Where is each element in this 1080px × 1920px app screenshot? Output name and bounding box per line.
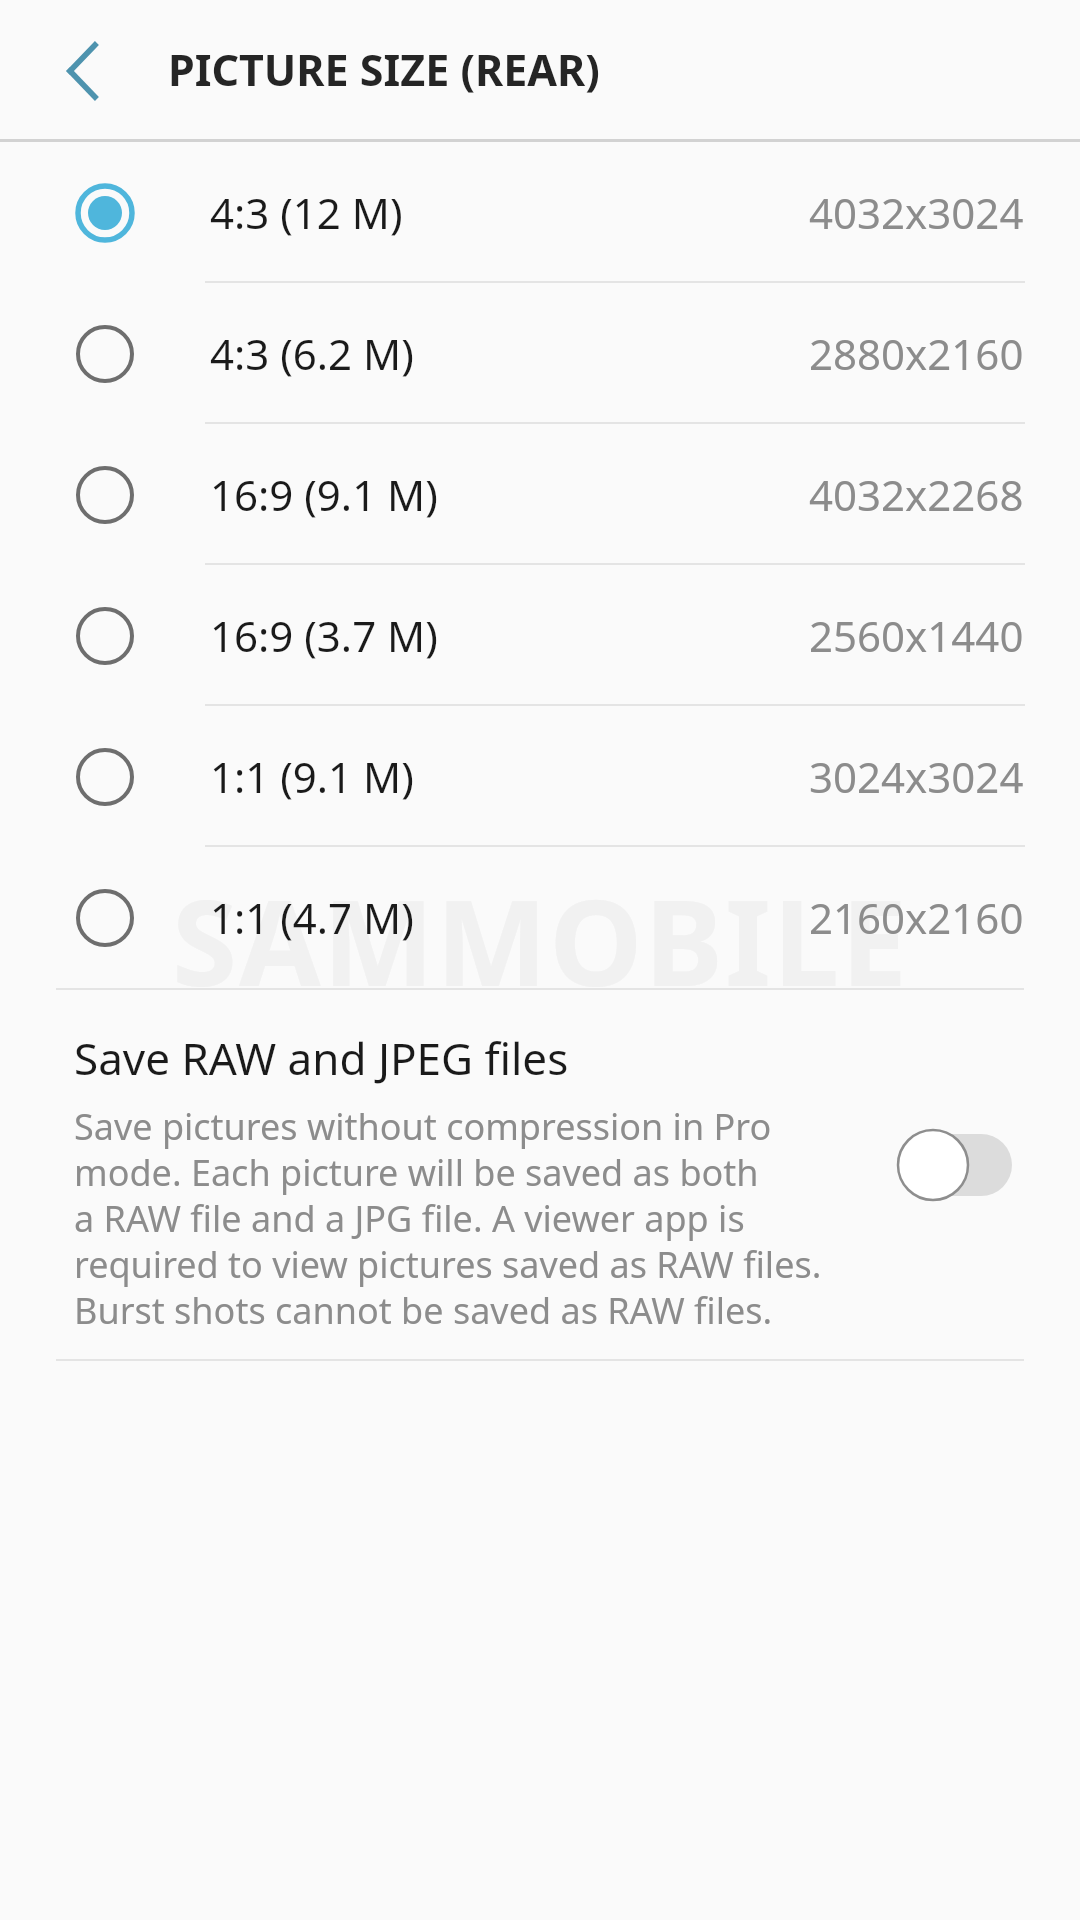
button[interactable]: 1:1 (9.1 M): [0, 706, 1080, 847]
staticText: 2880x2160: [809, 325, 1024, 382]
staticText: 16:9 (9.1 M): [210, 466, 438, 523]
button[interactable]: 16:9 (9.1 M): [0, 424, 1080, 565]
staticText: 4032x3024: [809, 184, 1024, 241]
staticText: Save RAW and JPEG files: [74, 1028, 569, 1088]
staticText: 1:1 (4.7 M): [210, 889, 414, 946]
staticText: 3024x3024: [809, 748, 1024, 805]
staticText: 4032x2268: [809, 466, 1024, 523]
staticText: 2560x1440: [809, 607, 1024, 664]
button[interactable]: 4:3 (6.2 M): [0, 283, 1080, 424]
staticText: 16:9 (3.7 M): [210, 607, 438, 664]
staticText: 4:3 (6.2 M): [210, 325, 414, 382]
button[interactable]: 4:3 (12 M): [0, 142, 1080, 283]
button[interactable]: Save RAW and JPEG files toggle: [892, 1120, 1022, 1210]
button[interactable]: Back: [28, 33, 104, 109]
staticText: 4:3 (12 M): [210, 184, 403, 241]
staticText: 2160x2160: [809, 889, 1024, 946]
button[interactable]: 16:9 (3.7 M): [0, 565, 1080, 706]
button[interactable]: Save RAW and JPEG files: [0, 990, 1080, 1359]
button[interactable]: 1:1 (4.7 M): [0, 847, 1080, 988]
staticText: 1:1 (9.1 M): [210, 748, 414, 805]
staticText: PICTURE SIZE (REAR): [168, 40, 600, 99]
staticText: Save pictures without compression in Pro…: [74, 1102, 822, 1335]
staticText: SAMMOBILE: [172, 860, 909, 1020]
